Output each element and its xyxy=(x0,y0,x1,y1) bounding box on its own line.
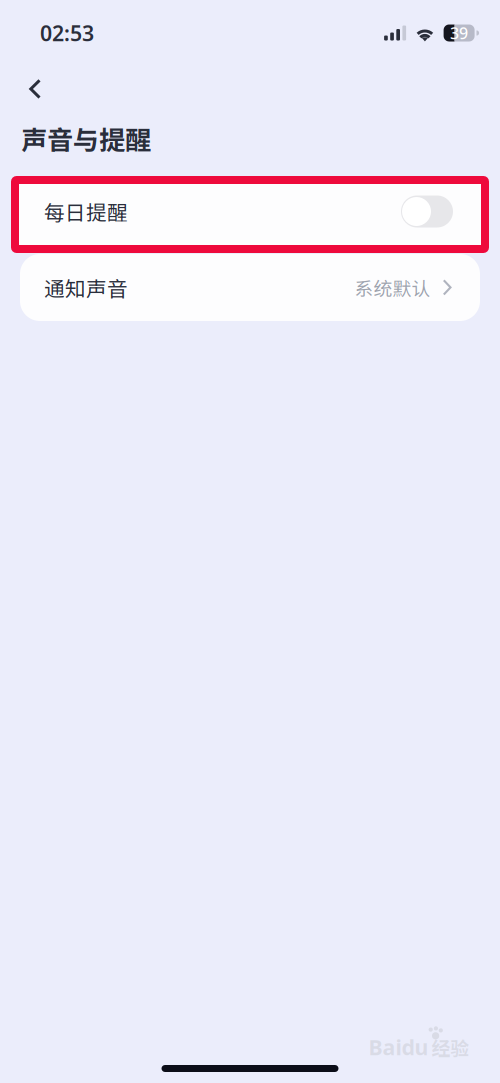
staticText: 02:53 xyxy=(40,19,94,47)
button[interactable]: Back xyxy=(0,65,59,99)
staticText: 声音与提醒 xyxy=(21,120,151,157)
staticText: 系统默认 xyxy=(354,274,430,301)
staticText: 通知声音 xyxy=(44,272,128,302)
staticText: 每日提醒 xyxy=(44,196,128,226)
staticText: 经验 xyxy=(431,1033,469,1060)
staticText: 39 xyxy=(450,22,468,44)
button[interactable]: 通知声音 xyxy=(20,254,480,321)
staticText: Baidu xyxy=(368,1033,428,1061)
button[interactable]: 每日提醒 xyxy=(15,180,485,249)
